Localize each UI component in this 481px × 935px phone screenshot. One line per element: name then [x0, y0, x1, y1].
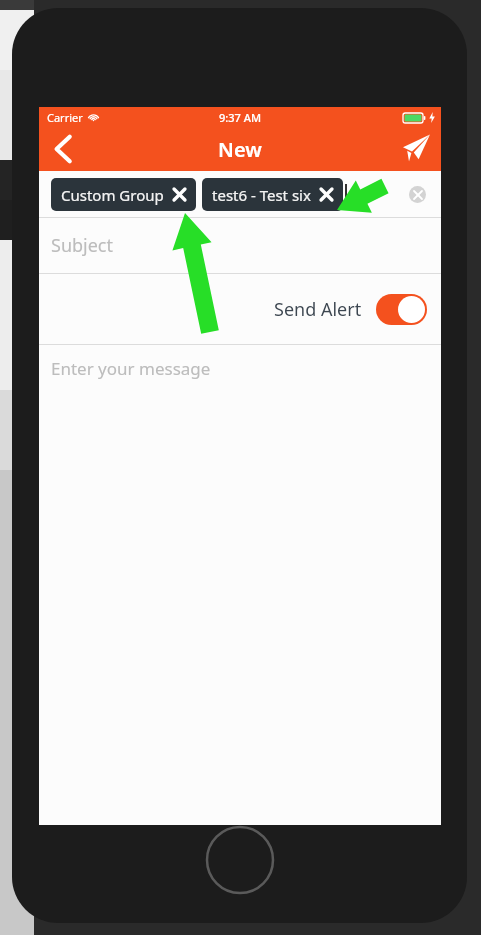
button[interactable]: Send Alert toggle, on [376, 294, 427, 325]
button[interactable]: Subject [39, 218, 441, 273]
staticText: New [218, 136, 262, 163]
staticText: 9:37 AM [219, 110, 262, 125]
staticText: Carrier [47, 110, 83, 125]
staticText: test6 - Test six [212, 185, 311, 205]
button[interactable]: test6 - Test six [202, 178, 343, 211]
staticText: Subject [51, 233, 114, 258]
button[interactable]: Back [39, 127, 87, 171]
button[interactable]: Custom Group [51, 178, 196, 211]
button[interactable]: Clear recipients [404, 181, 430, 207]
button[interactable]: Home [205, 825, 275, 895]
button[interactable]: Send [389, 127, 441, 171]
button[interactable]: Enter your message [39, 345, 441, 825]
staticText: Custom Group [61, 185, 164, 205]
staticText: Send Alert [274, 297, 362, 322]
staticText: Enter your message [51, 357, 211, 380]
button[interactable]: Send Alert [274, 294, 427, 325]
